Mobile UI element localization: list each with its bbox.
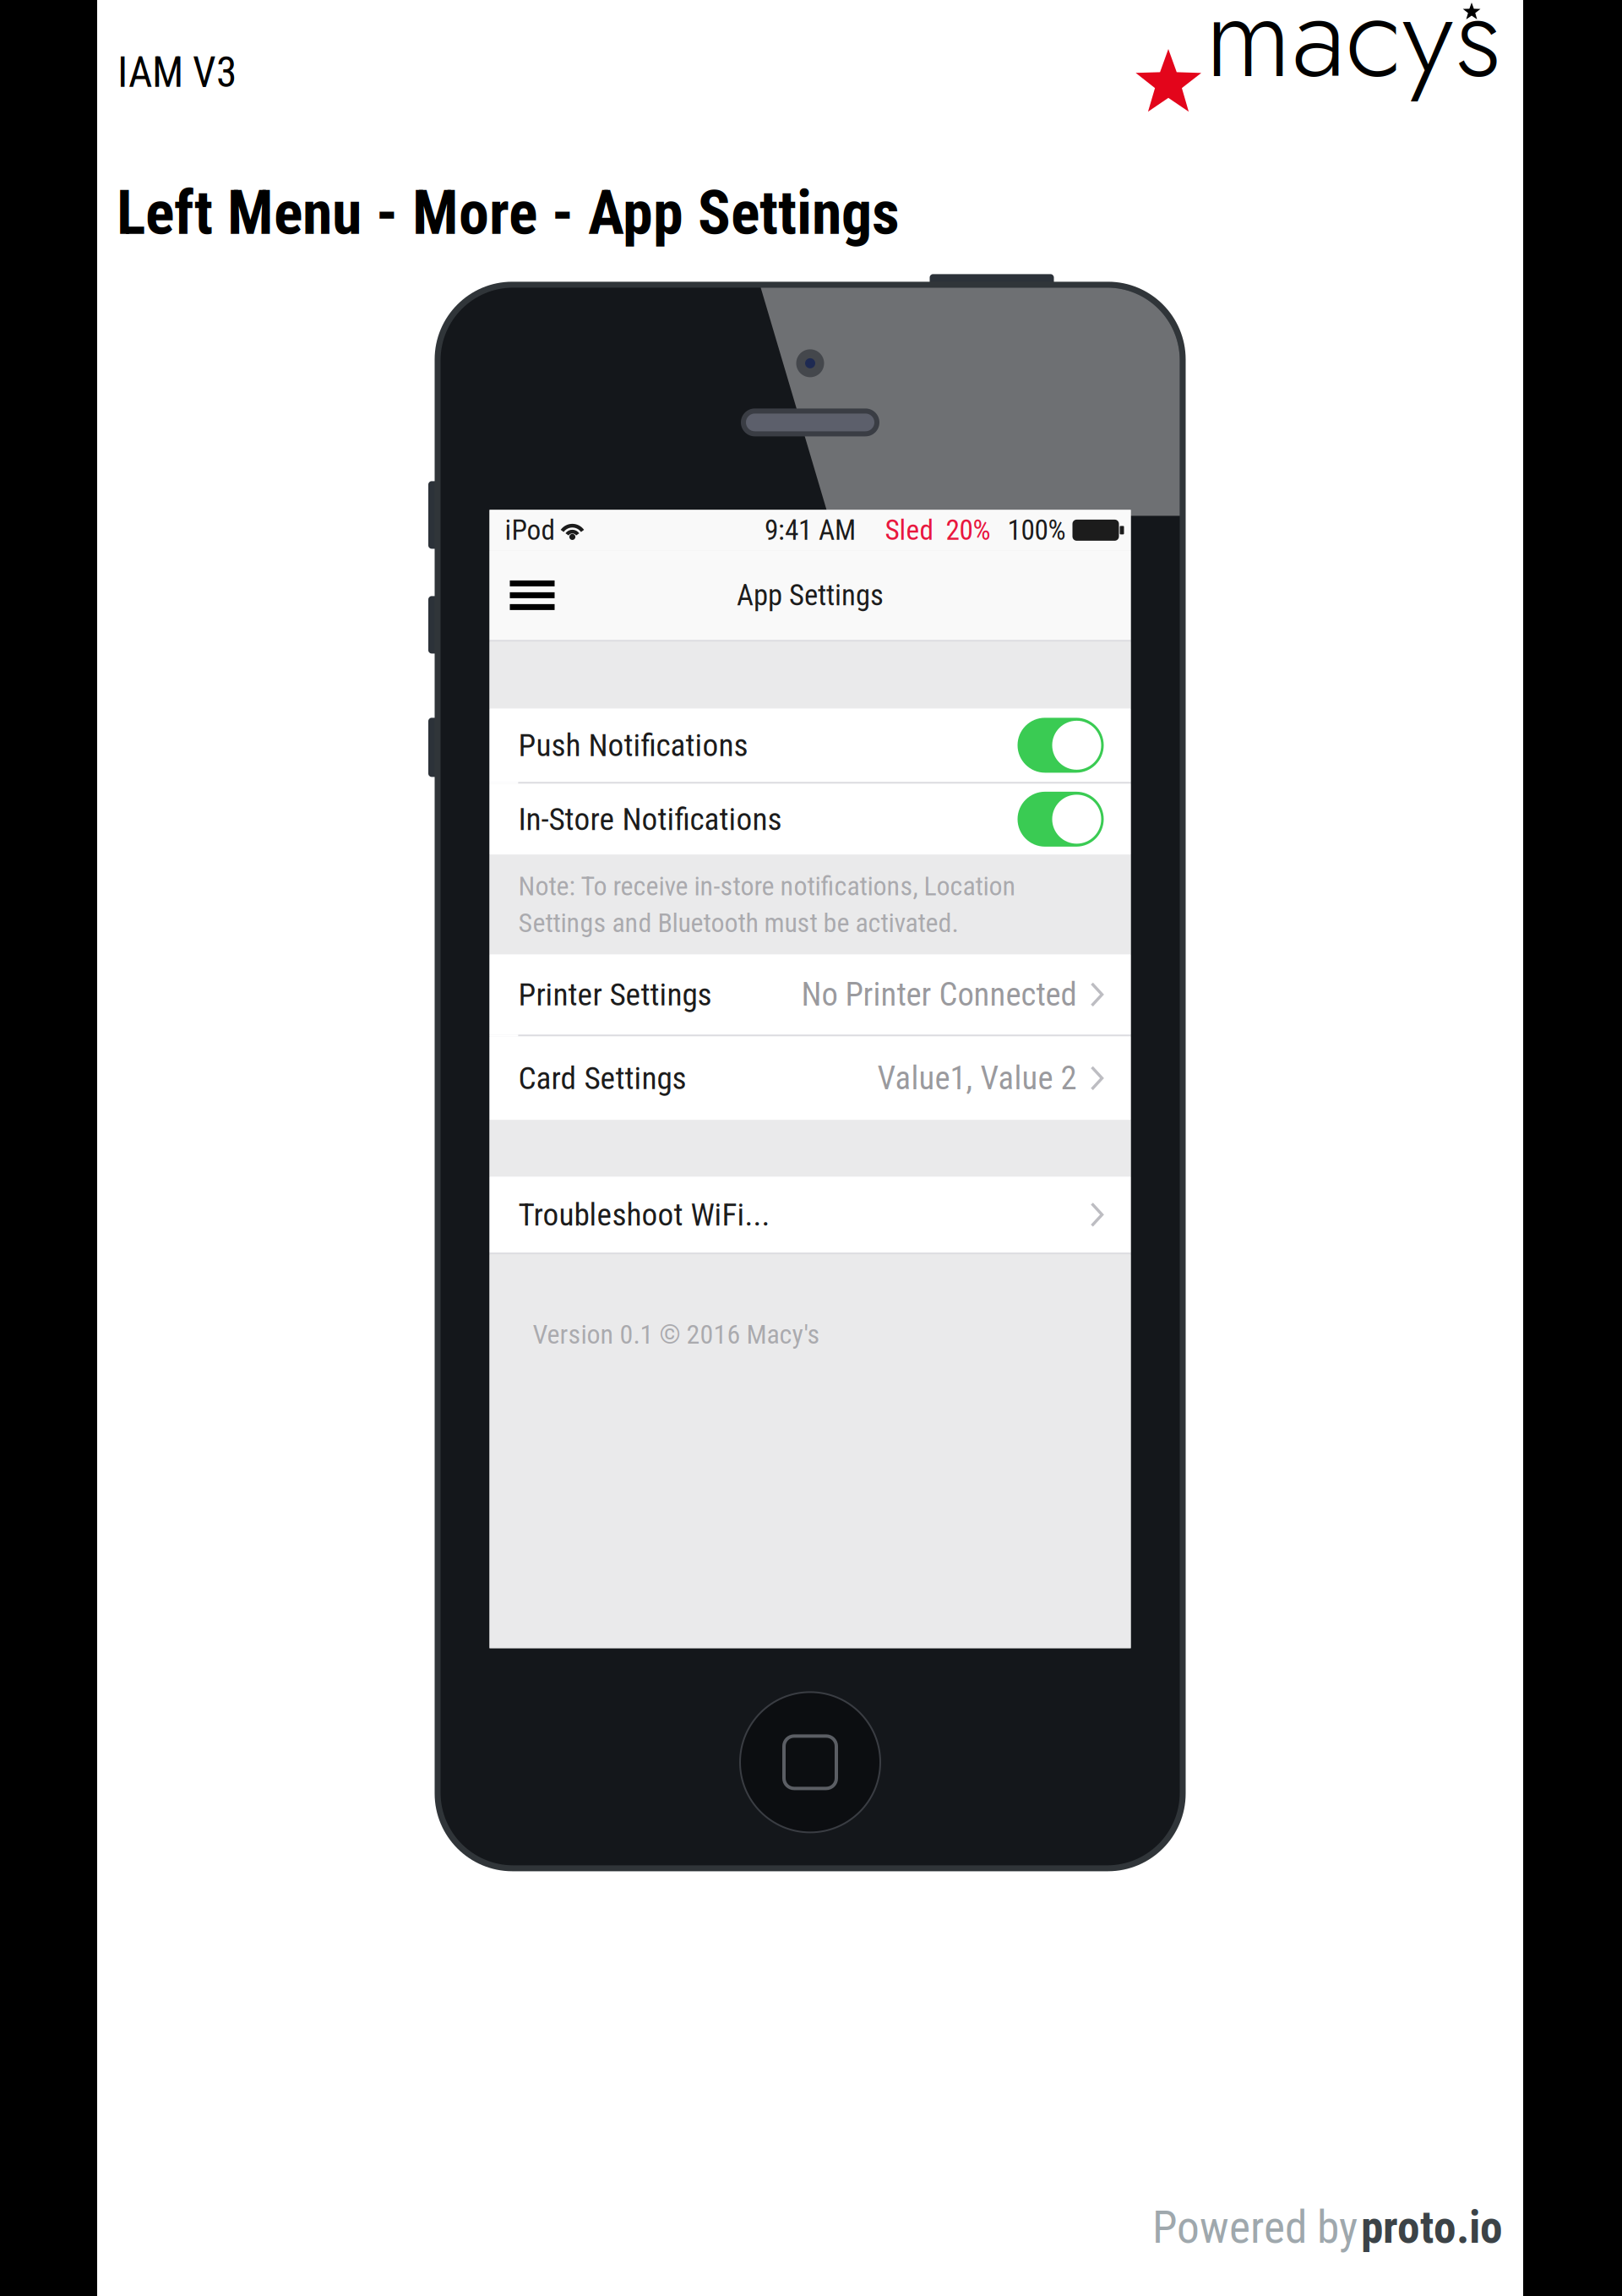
button[interactable]: Printer Settings bbox=[490, 954, 1131, 1035]
staticText: Value1, Value 2 bbox=[877, 1059, 1077, 1097]
staticText: macy bbox=[1205, 0, 1453, 120]
staticText: In-Store Notifications bbox=[518, 801, 782, 838]
staticText: s bbox=[1455, 0, 1502, 120]
staticText: proto.io bbox=[1361, 2201, 1503, 2254]
staticText: 20% bbox=[946, 514, 991, 547]
staticText: Card Settings bbox=[518, 1060, 686, 1097]
staticText: Push Notifications bbox=[518, 727, 748, 764]
staticText: Left Menu - More - App Settings bbox=[117, 177, 900, 249]
button[interactable]: Card Settings bbox=[490, 1036, 1131, 1120]
button[interactable]: Push Notifications bbox=[490, 708, 1131, 782]
button[interactable]: In-Store Notifications bbox=[490, 784, 1131, 855]
staticText: IAM V3 bbox=[117, 48, 237, 97]
staticText: iPod bbox=[505, 514, 555, 547]
staticText: No Printer Connected bbox=[801, 975, 1077, 1014]
staticText: Sled bbox=[885, 514, 934, 547]
staticText: 9:41 AM bbox=[765, 514, 856, 547]
staticText: Troubleshoot WiFi... bbox=[518, 1196, 770, 1233]
button[interactable]: Troubleshoot WiFi... bbox=[490, 1177, 1131, 1253]
staticText: Version 0.1 © 2016 Macy's bbox=[533, 1319, 820, 1350]
staticText: Settings and Bluetooth must be activated… bbox=[518, 907, 958, 939]
staticText: Note: To receive in-store notifications,… bbox=[518, 870, 1016, 902]
button[interactable]: Menu bbox=[490, 550, 575, 640]
staticText: Powered by bbox=[1152, 2201, 1358, 2254]
staticText: App Settings bbox=[737, 578, 884, 612]
staticText: Printer Settings bbox=[518, 976, 712, 1013]
staticText: 100% bbox=[1007, 514, 1066, 547]
